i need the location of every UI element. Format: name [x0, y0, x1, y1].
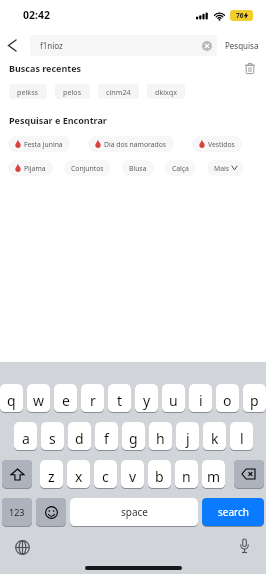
staticText: f1nioz — [40, 40, 63, 51]
staticText: Pesquisar e Encontrar — [9, 114, 107, 126]
button[interactable]: Dia dos namorados — [88, 136, 174, 152]
staticText: l — [240, 429, 244, 448]
staticText: Dia dos namorados — [104, 140, 167, 149]
staticText: g — [129, 429, 138, 448]
button[interactable]: j — [176, 422, 199, 451]
button[interactable] — [243, 61, 257, 75]
button[interactable]: pelos — [55, 84, 90, 99]
staticText: w — [33, 391, 45, 410]
button[interactable]: Blusa — [122, 160, 154, 176]
button[interactable]: y — [135, 384, 158, 413]
button[interactable]: Conjuntos — [64, 160, 111, 176]
staticText: r — [90, 391, 96, 410]
button[interactable]: Pesquisa — [217, 40, 266, 51]
staticText: Pesquisa — [225, 40, 259, 51]
staticText: pelos — [63, 87, 82, 97]
button[interactable]: a — [14, 422, 37, 451]
staticText: cinm24 — [106, 87, 131, 97]
button[interactable] — [36, 498, 66, 527]
staticText: d — [75, 429, 84, 448]
staticText: Calça — [172, 164, 189, 173]
staticText: dkixqx — [155, 87, 177, 97]
button[interactable]: Vestidos — [192, 136, 242, 152]
staticText: h — [156, 429, 165, 448]
button[interactable]: e — [54, 384, 77, 413]
staticText: Vestidos — [208, 140, 235, 149]
staticText: Buscas recentes — [9, 62, 82, 74]
staticText: i — [199, 391, 203, 410]
staticText: Conjuntos — [71, 164, 104, 173]
button[interactable]: t — [108, 384, 131, 413]
staticText: o — [223, 391, 232, 410]
button[interactable]: f1nioz — [30, 35, 217, 56]
staticText: m — [207, 467, 221, 486]
button[interactable]: r — [81, 384, 104, 413]
staticText: Mais — [214, 164, 229, 173]
button[interactable]: s — [41, 422, 64, 451]
staticText: t — [117, 391, 123, 410]
staticText: c — [102, 467, 109, 486]
button[interactable]: i — [189, 384, 212, 413]
staticText: 76 — [236, 11, 244, 20]
staticText: b — [155, 467, 164, 486]
button[interactable]: cinm24 — [98, 84, 139, 99]
button[interactable]: Festa Junina — [8, 136, 70, 152]
button[interactable]: g — [122, 422, 145, 451]
button[interactable]: Mais — [207, 160, 244, 176]
staticText: v — [129, 467, 137, 486]
button[interactable]: k — [203, 422, 226, 451]
button[interactable]: o — [216, 384, 239, 413]
staticText: Pijama — [24, 164, 46, 173]
button[interactable]: f — [95, 422, 118, 451]
staticText: Blusa — [129, 164, 147, 173]
button[interactable]: Calça — [165, 160, 196, 176]
staticText: q — [7, 391, 16, 410]
button[interactable] — [234, 460, 264, 489]
button[interactable]: l — [230, 422, 253, 451]
staticText: x — [75, 467, 83, 486]
staticText: 02:42 — [23, 8, 50, 22]
button[interactable]: Pijama — [8, 160, 53, 176]
staticText: e — [62, 391, 70, 410]
button[interactable]: b — [148, 460, 171, 489]
button[interactable]: 123 — [2, 498, 32, 527]
staticText: n — [182, 467, 191, 486]
staticText: pelkss — [17, 87, 39, 97]
button[interactable]: dkixqx — [147, 84, 185, 99]
button[interactable]: w — [27, 384, 50, 413]
staticText: y — [143, 391, 151, 410]
staticText: z — [48, 467, 55, 486]
staticText: u — [169, 391, 178, 410]
staticText: search — [218, 505, 249, 519]
staticText: f — [104, 429, 109, 448]
button[interactable]: v — [121, 460, 144, 489]
button[interactable]: x — [67, 460, 90, 489]
button[interactable]: pelkss — [9, 84, 47, 99]
button[interactable]: search — [202, 498, 264, 527]
button[interactable]: u — [162, 384, 185, 413]
button[interactable]: d — [68, 422, 91, 451]
staticText: k — [211, 429, 219, 448]
button[interactable]: c — [94, 460, 117, 489]
staticText: s — [49, 429, 56, 448]
button[interactable]: n — [175, 460, 198, 489]
button[interactable] — [13, 538, 31, 556]
button[interactable] — [0, 34, 24, 57]
staticText: 123 — [9, 506, 25, 518]
button[interactable]: m — [202, 460, 225, 489]
staticText: Festa Junina — [24, 140, 63, 149]
button[interactable]: h — [149, 422, 172, 451]
staticText: j — [186, 429, 190, 448]
staticText: space — [121, 505, 148, 519]
staticText: p — [250, 391, 259, 410]
button[interactable] — [202, 41, 212, 51]
button[interactable] — [2, 460, 32, 489]
button[interactable]: p — [243, 384, 266, 413]
button[interactable]: space — [70, 498, 198, 527]
staticText: a — [22, 429, 30, 448]
button[interactable]: q — [0, 384, 23, 413]
button[interactable] — [235, 538, 253, 556]
button[interactable]: z — [40, 460, 63, 489]
